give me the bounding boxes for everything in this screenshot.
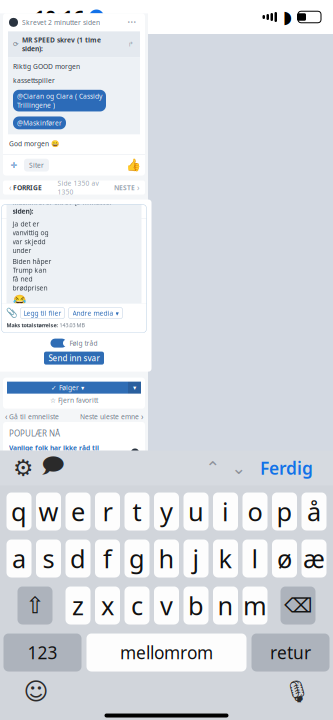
button[interactable]: ⇧	[17, 586, 52, 624]
button[interactable]: 123	[3, 633, 81, 671]
button[interactable]: e	[65, 492, 90, 530]
button[interactable]: z	[65, 586, 90, 624]
button[interactable]: ✓ Følger ▾	[7, 382, 128, 394]
staticText: f	[103, 542, 112, 575]
button[interactable]: å	[301, 492, 326, 530]
staticText: 143.03 MB	[59, 321, 84, 329]
button[interactable]: Forslag	[38, 453, 68, 483]
staticText: NESTE	[114, 183, 135, 192]
button[interactable]: mellomrom	[86, 633, 246, 671]
button[interactable]: a	[6, 539, 31, 577]
button[interactable]: Siter	[24, 159, 49, 172]
staticText: i	[222, 495, 229, 528]
staticText: Skrevet 2 minutter siden	[22, 18, 100, 27]
button[interactable]: p	[272, 492, 297, 530]
staticText: Riktig GOOD morgen	[13, 62, 80, 71]
button[interactable]: Følg tråd	[50, 339, 97, 348]
staticText: Ferdig	[260, 456, 313, 479]
button[interactable]: NESTE	[114, 182, 139, 193]
staticText: Maskinfører skrev (3 minutter siden):	[12, 198, 112, 215]
button[interactable]: ‹	[9, 182, 42, 193]
button[interactable]: r	[95, 492, 120, 530]
staticText: h	[158, 542, 174, 575]
button[interactable]: i	[213, 492, 238, 530]
button[interactable]: ø	[272, 539, 297, 577]
button[interactable]: d	[65, 539, 90, 577]
staticText: B	[9, 205, 15, 218]
button[interactable]: Neste felt	[226, 454, 252, 482]
staticText: r	[102, 495, 112, 528]
staticText: c	[131, 589, 143, 622]
staticText: ‹	[9, 182, 11, 193]
staticText: 🗩	[41, 450, 65, 486]
button[interactable]: Valg	[128, 382, 141, 394]
button[interactable]: o	[242, 492, 267, 530]
button[interactable]: Flere valg	[125, 17, 139, 27]
staticText: æ	[303, 542, 325, 575]
staticText: Side 1350 av 1350	[57, 179, 98, 196]
staticText: ⟳	[13, 40, 19, 48]
button[interactable]: Neste uleste emne	[80, 411, 143, 422]
button[interactable]: Ferdig	[252, 453, 321, 483]
button[interactable]: Emoji	[22, 677, 50, 705]
button[interactable]: ⌫	[280, 586, 315, 624]
button[interactable]: Legg til filer	[20, 307, 64, 318]
button[interactable]: U	[32, 205, 44, 217]
staticText: ø	[277, 542, 292, 575]
button[interactable]: u	[183, 492, 208, 530]
staticText: v	[160, 589, 173, 622]
button[interactable]: s	[36, 539, 61, 577]
button[interactable]: ☆ Fjern favoritt	[3, 394, 145, 407]
button[interactable]: Vedlegg	[6, 308, 16, 318]
staticText: n	[217, 589, 233, 622]
staticText: ‹	[5, 411, 7, 422]
button[interactable]: w	[36, 492, 61, 530]
button[interactable]: q	[6, 492, 31, 530]
button[interactable]: æ	[301, 539, 326, 577]
button[interactable]: c	[124, 586, 149, 624]
button[interactable]: h	[154, 539, 179, 577]
button[interactable]: Send inn svar	[44, 352, 104, 365]
button[interactable]: k	[213, 539, 238, 577]
button[interactable]: Lik	[127, 159, 139, 171]
button[interactable]: f	[95, 539, 120, 577]
staticText: j	[192, 542, 199, 575]
staticText: FORRIGE	[13, 183, 42, 192]
button[interactable]: j	[183, 539, 208, 577]
button[interactable]: Diktering	[283, 677, 311, 705]
button[interactable]: I	[19, 205, 31, 217]
button[interactable]: n	[213, 586, 238, 624]
button[interactable]: y	[154, 492, 179, 530]
staticText: God morgen 😄	[9, 139, 59, 148]
button[interactable]: m	[242, 586, 267, 624]
button[interactable]: Legg til	[9, 160, 19, 170]
button[interactable]: Andre media ▾	[68, 307, 122, 318]
button[interactable]: Gå til innlegg	[127, 40, 135, 48]
button[interactable]: x	[95, 586, 120, 624]
staticText: ✛	[10, 161, 17, 170]
button[interactable]: v	[154, 586, 179, 624]
button[interactable]: b	[183, 586, 208, 624]
button[interactable]: Forrige felt	[200, 454, 226, 482]
staticText: ◗	[283, 7, 292, 27]
staticText: Enig der	[8, 317, 35, 326]
staticText: POPULÆR NÅ	[9, 428, 60, 439]
staticText: Følg tråd	[69, 339, 97, 348]
button[interactable]: ‹	[5, 411, 59, 422]
staticText: @Maskinfører	[17, 118, 62, 127]
button[interactable]: retur	[251, 633, 329, 671]
staticText: e	[71, 495, 85, 528]
button[interactable]: t	[124, 492, 149, 530]
button[interactable]: Innstillinger	[8, 453, 38, 483]
button[interactable]: g	[124, 539, 149, 577]
staticText: ⌃	[205, 458, 220, 478]
button[interactable]: l	[242, 539, 267, 577]
button[interactable]: B	[6, 205, 18, 217]
